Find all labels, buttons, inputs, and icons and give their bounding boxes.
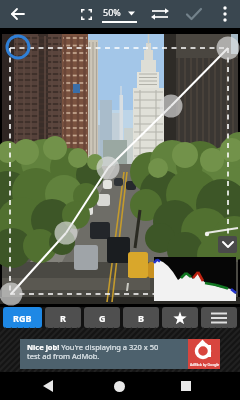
staticText: R: [60, 312, 66, 324]
staticText: AdMob by Google: [190, 362, 220, 367]
button[interactable]: R: [45, 307, 81, 328]
button[interactable]: [148, 2, 172, 26]
button[interactable]: B: [123, 307, 159, 328]
button[interactable]: [6, 2, 30, 26]
staticText: Nice job! You're displaying a 320 x 50 t…: [27, 342, 185, 362]
button[interactable]: [218, 236, 237, 253]
button[interactable]: G: [84, 307, 120, 328]
button[interactable]: [213, 2, 237, 26]
button[interactable]: Nice job! You're displaying a 320 x 50 t…: [20, 339, 220, 369]
staticText: 50%: [103, 6, 121, 18]
button[interactable]: [104, 372, 134, 400]
staticText: RGB: [13, 312, 32, 324]
button[interactable]: [201, 307, 237, 328]
button[interactable]: [162, 307, 198, 328]
button[interactable]: [182, 2, 206, 26]
button[interactable]: RGB: [3, 307, 42, 328]
staticText: G: [99, 312, 106, 324]
button[interactable]: [74, 2, 98, 26]
button[interactable]: 50%: [100, 2, 140, 26]
button[interactable]: [171, 372, 201, 400]
staticText: B: [138, 312, 144, 324]
button[interactable]: [33, 372, 63, 400]
